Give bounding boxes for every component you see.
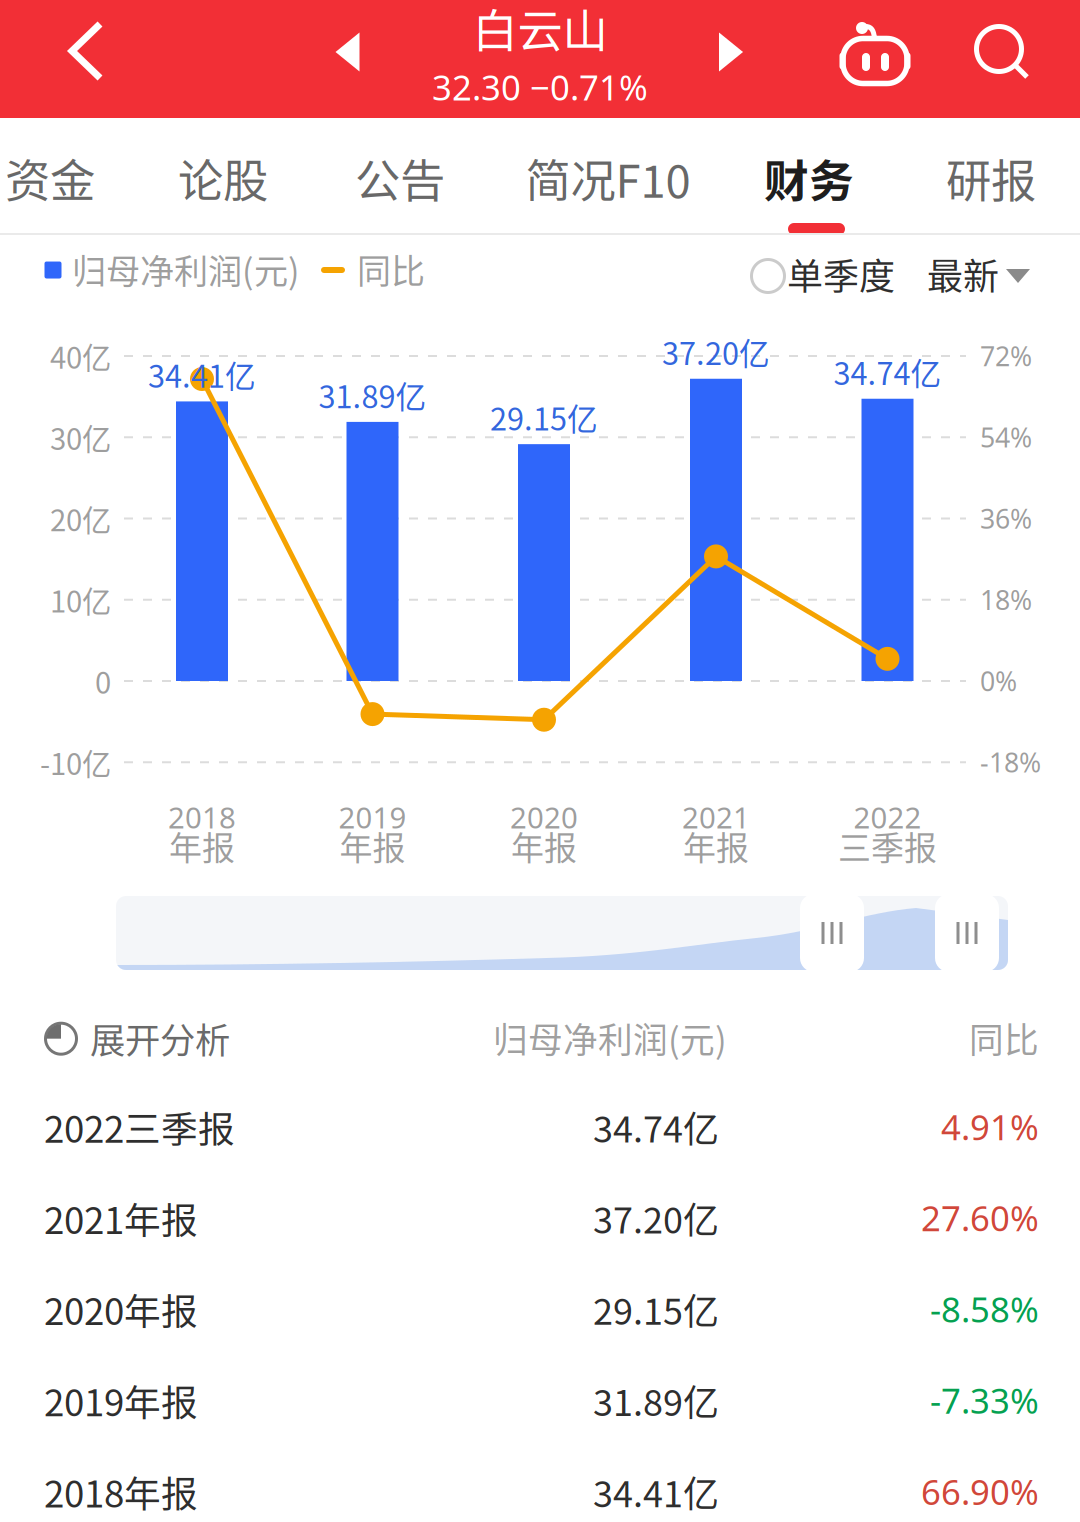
staticText: 10亿 [50,578,111,621]
button[interactable]: 2022三季报 [0,1082,1080,1173]
staticText: 年报 [511,822,577,870]
staticText: 40亿 [50,335,111,377]
staticText: 财务 [764,146,854,210]
button[interactable]: 2019年报 [0,1355,1080,1446]
staticText: 66.90% [921,1468,1039,1514]
staticText: 34.74亿 [593,1101,719,1153]
staticText: 4.91% [941,1104,1039,1150]
staticText: 归母净利润(元) [493,1013,727,1063]
staticText: 29.15亿 [490,395,598,439]
staticText: 32.30 −0.71% [432,64,648,110]
staticText: 37.20亿 [593,1192,719,1244]
staticText: 37.20亿 [662,329,770,374]
staticText: 54% [980,419,1032,455]
staticText: 20亿 [50,497,111,540]
staticText: 白云山 [472,0,607,61]
button[interactable]: Previous stock [303,8,391,96]
staticText: 归母净利润(元) [72,244,300,294]
staticText: 年报 [339,822,405,870]
staticText: 同比 [357,244,425,294]
staticText: 29.15亿 [593,1283,719,1335]
staticText: 2022 [853,797,921,836]
staticText: 0% [980,663,1017,699]
staticText: 年报 [169,822,235,870]
staticText: 公告 [355,145,445,211]
staticText: 研报 [946,145,1036,211]
staticText: 论股 [178,145,268,211]
staticText: 单季度 [787,248,895,300]
button[interactable]: 单季度 [741,235,903,317]
button[interactable]: 研报 [902,118,1080,235]
staticText: 27.60% [921,1195,1039,1241]
staticText: 2019年报 [44,1374,198,1427]
button[interactable]: 简况F10 [503,118,713,235]
staticText: 2020年报 [44,1283,198,1336]
staticText: 34.74亿 [833,349,941,394]
staticText: 34.41亿 [148,352,256,397]
button[interactable]: 2020年报 [0,1264,1080,1355]
button[interactable]: Range start [800,894,864,972]
button[interactable]: 2021年报 [0,1173,1080,1264]
button[interactable]: Search [951,3,1055,103]
staticText: 三季报 [838,822,937,870]
staticText: 2018 [168,797,236,836]
button[interactable]: 公告 [314,118,486,235]
button[interactable]: Back [26,0,146,110]
staticText: -10亿 [40,741,111,783]
button[interactable]: 财务 [723,118,895,235]
staticText: 31.89亿 [318,373,426,417]
staticText: 2021 [682,797,750,836]
staticText: 2018年报 [44,1465,198,1518]
staticText: 2022三季报 [44,1100,235,1153]
staticText: 72% [980,338,1032,374]
staticText: -18% [980,744,1041,780]
staticText: 2021年报 [44,1191,198,1244]
staticText: 34.41亿 [593,1465,719,1517]
staticText: 年报 [683,822,749,870]
staticText: -8.58% [930,1286,1039,1332]
staticText: 资金 [5,145,95,211]
staticText: 18% [980,582,1032,617]
staticText: 36% [980,501,1032,536]
staticText: 30亿 [50,416,111,458]
staticText: 2019 [338,797,406,836]
staticText: -7.33% [930,1377,1039,1423]
staticText: 0 [95,660,111,702]
button[interactable]: Range end [935,894,999,972]
staticText: 31.89亿 [593,1374,719,1426]
button[interactable]: 展开分析 [0,995,1080,1079]
button[interactable]: 最新 [930,235,1046,317]
button[interactable]: 资金 [0,118,100,235]
button[interactable]: AI assistant [823,2,927,98]
staticText: 同比 [969,1013,1039,1063]
button[interactable]: 2018年报 [0,1446,1080,1522]
staticText: 展开分析 [90,1012,230,1064]
button[interactable]: Next stock [687,8,775,96]
button[interactable]: 论股 [137,118,309,235]
staticText: 简况F10 [525,145,690,211]
staticText: 最新 [927,248,999,300]
staticText: 2020 [510,797,578,836]
